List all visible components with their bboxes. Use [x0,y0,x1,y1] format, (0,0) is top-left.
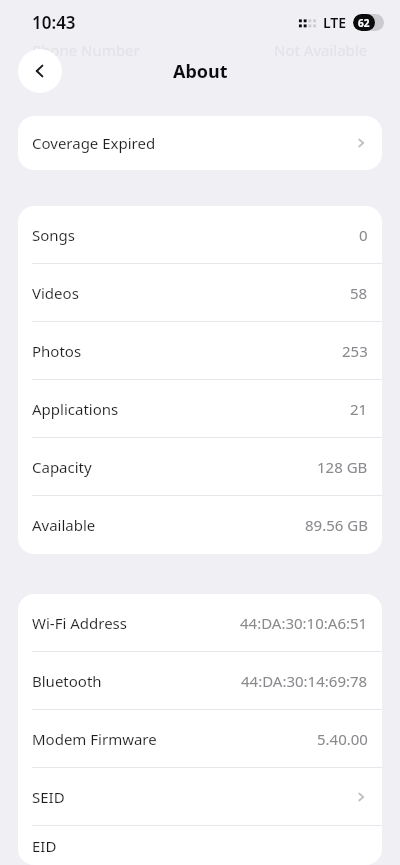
staticText: Coverage Expired [32,133,156,153]
button[interactable]: SEID [18,768,382,826]
staticText: Applications [32,399,119,419]
staticText: EID [32,836,57,856]
button[interactable]: Songs [18,206,382,264]
staticText: 5.40.00 [317,729,368,749]
staticText: 0 [359,225,368,245]
button[interactable]: EID [18,826,382,865]
staticText: LTE [323,13,347,32]
staticText: 253 [342,341,368,361]
staticText: Not Available [274,40,368,60]
staticText: Available [32,515,96,535]
staticText: 58 [350,283,368,303]
staticText: Modem Firmware [32,729,157,749]
button[interactable]: Applications [18,380,382,438]
staticText: Wi-Fi Address [32,613,127,633]
staticText: Bluetooth [32,671,102,691]
staticText: About [173,59,228,84]
button[interactable]: Videos [18,264,382,322]
staticText: Songs [32,225,75,245]
button[interactable]: Photos [18,322,382,380]
staticText: Phone Number [32,40,140,60]
staticText: Videos [32,283,79,303]
button[interactable]: Capacity [18,438,382,496]
button[interactable]: Coverage Expired [18,116,382,170]
staticText: 44:DA:30:10:A6:51 [240,613,368,633]
button[interactable]: Back [18,49,62,93]
button[interactable]: Bluetooth [18,652,382,710]
staticText: Capacity [32,457,92,477]
staticText: 128 GB [317,457,368,477]
button[interactable]: Available [18,496,382,554]
button[interactable]: Wi-Fi Address [18,594,382,652]
staticText: SEID [32,787,65,807]
button[interactable]: Modem Firmware [18,710,382,768]
staticText: 62 [358,16,370,30]
staticText: 89.56 GB [305,515,368,535]
staticText: Photos [32,341,82,361]
staticText: 21 [350,399,368,419]
staticText: 44:DA:30:14:69:78 [241,671,368,691]
staticText: 10:43 [32,11,76,34]
